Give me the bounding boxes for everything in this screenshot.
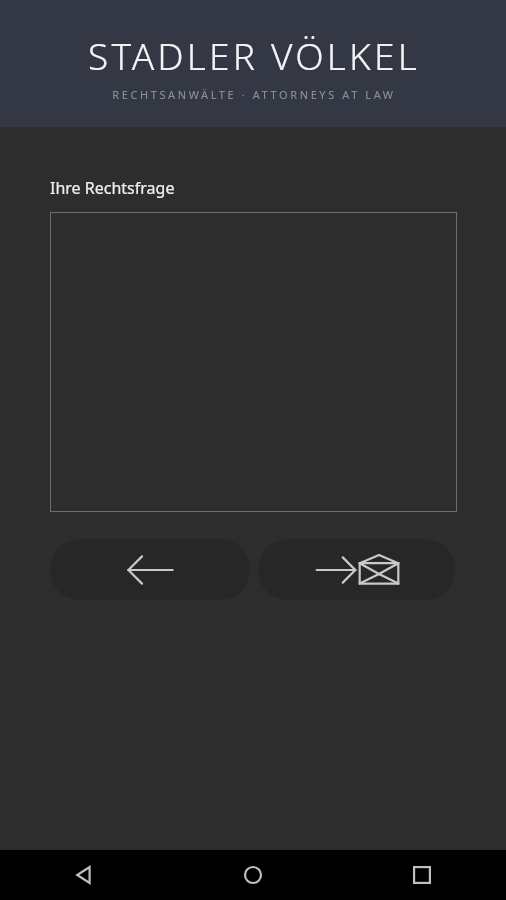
button[interactable]: Home <box>168 850 337 900</box>
button[interactable]: Back <box>0 850 168 900</box>
button[interactable] <box>50 212 457 512</box>
staticText: RECHTSANWÄLTE · ATTORNEYS AT LAW <box>36 87 472 102</box>
button[interactable]: Send <box>258 539 455 600</box>
staticText: Ihre Rechtsfrage <box>50 177 175 199</box>
button[interactable]: Back <box>50 539 250 600</box>
button[interactable]: Recent apps <box>337 850 506 900</box>
staticText: STADLER VÖLKEL <box>36 30 472 80</box>
